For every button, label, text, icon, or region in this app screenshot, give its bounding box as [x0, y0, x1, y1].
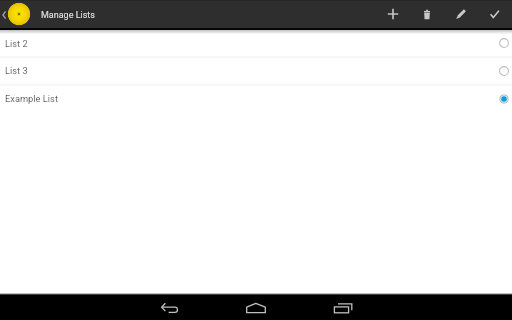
button[interactable]: Recents	[319, 295, 367, 320]
staticText: List 2	[5, 38, 28, 49]
staticText: List 3	[5, 65, 28, 76]
button[interactable]: Example List	[0, 85, 512, 112]
button[interactable]: Delete	[410, 0, 444, 28]
button[interactable]: List 2	[0, 30, 512, 56]
button[interactable]: Up	[0, 0, 32, 28]
button[interactable]: Edit	[444, 0, 478, 28]
button[interactable]: Back	[146, 295, 194, 320]
button[interactable]: List 3	[0, 57, 512, 84]
button[interactable]: Add	[376, 0, 410, 28]
staticText: Example List	[5, 93, 58, 104]
staticText: Manage Lists	[41, 10, 95, 21]
button[interactable]: Done	[478, 0, 512, 28]
button[interactable]: Home	[232, 295, 280, 320]
